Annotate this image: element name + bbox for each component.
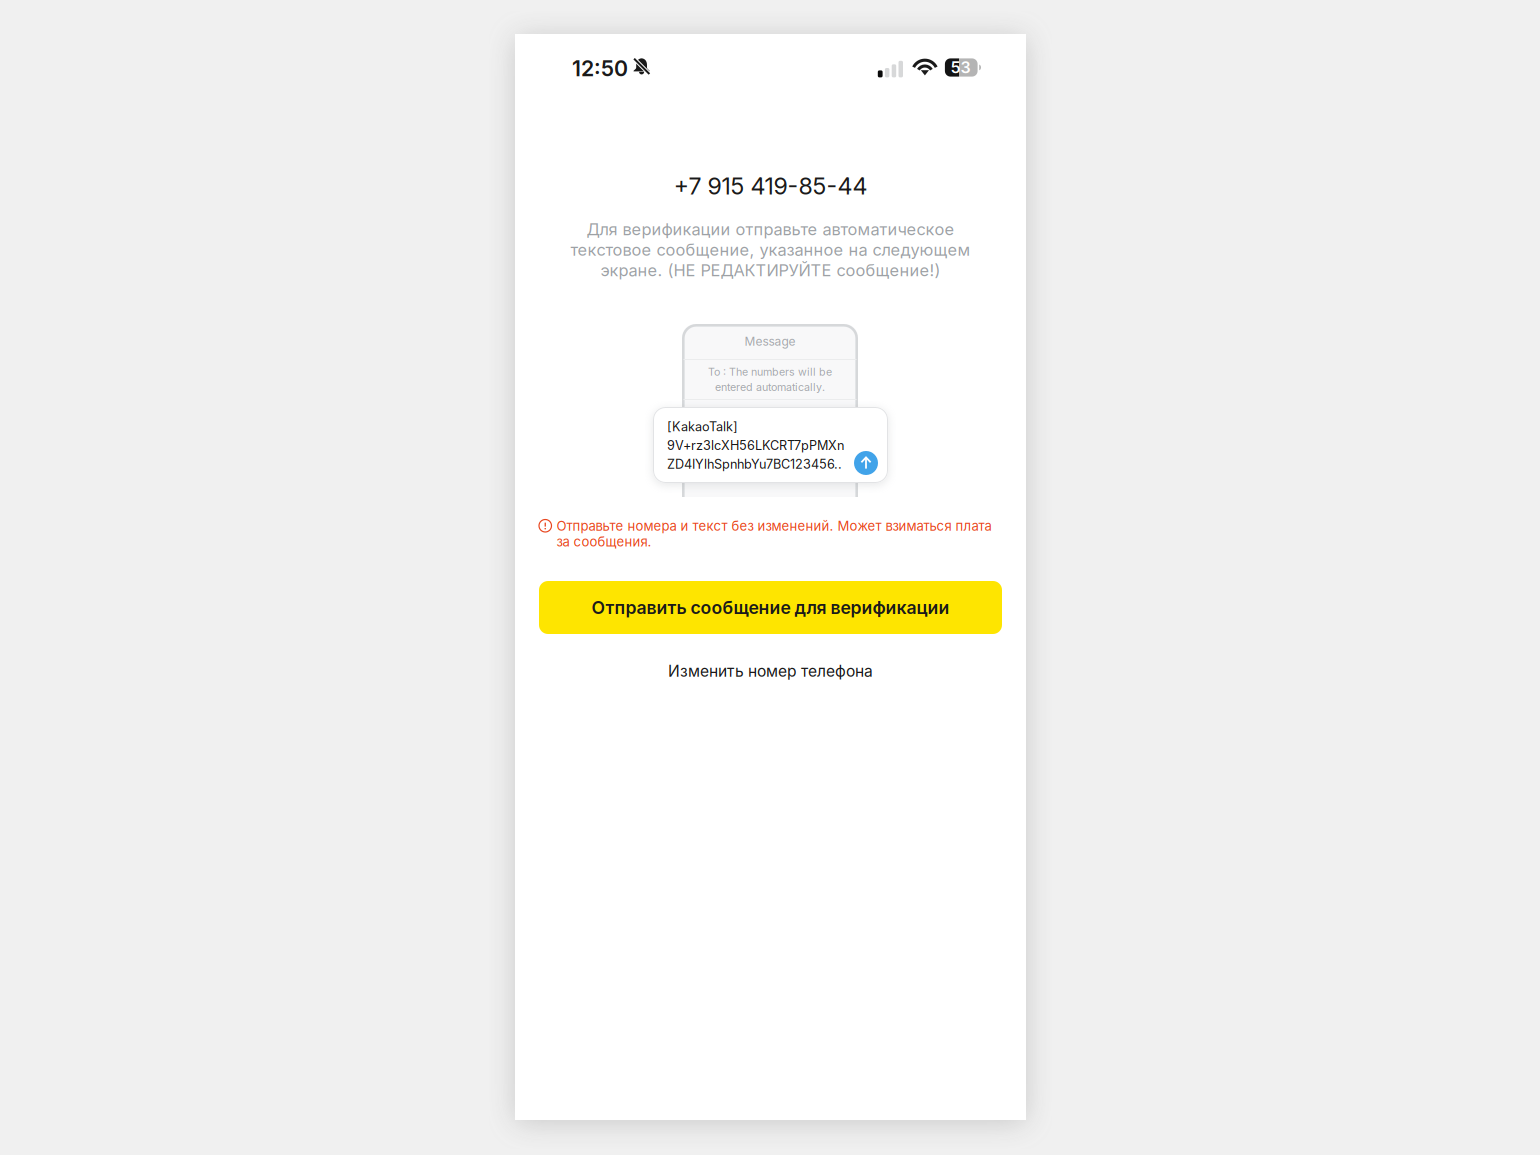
staticText: Отправьте номера и текст без изменений. … <box>556 518 991 534</box>
staticText: Отправить сообщение для верификации <box>591 597 949 618</box>
staticText: Message <box>744 334 795 349</box>
staticText: Изменить номер телефона <box>668 662 873 680</box>
staticText: 12:50 <box>572 56 628 81</box>
button[interactable]: Отправить сообщение для верификации <box>539 581 1002 634</box>
staticText: за сообщения. <box>556 534 651 550</box>
staticText: текстовое сообщение, указанное на следую… <box>570 240 970 260</box>
staticText: 53 <box>951 58 971 77</box>
staticText: entered automatically. <box>715 381 825 394</box>
staticText: To : The numbers will be <box>708 365 832 378</box>
staticText: ZD4IYlhSpnhbYu7BC123456.. <box>667 456 842 472</box>
staticText: [KakaoTalk] <box>667 419 738 434</box>
button[interactable]: Изменить номер телефона <box>640 651 900 691</box>
staticText: экране. (НЕ РЕДАКТИРУЙТЕ сообщение!) <box>600 260 940 280</box>
staticText: +7 915 419-85-44 <box>673 172 867 200</box>
staticText: 9V+rz3lcXH56LKCRT7pPMXn <box>667 438 844 453</box>
staticText: Для верификации отправьте автоматическое <box>586 219 954 239</box>
